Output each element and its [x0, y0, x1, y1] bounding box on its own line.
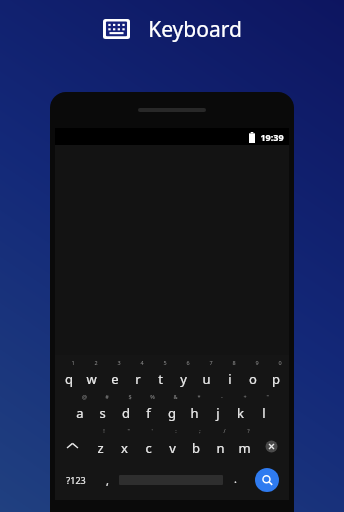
- button[interactable]: 1: [57, 359, 80, 393]
- staticText: ": [127, 427, 130, 434]
- staticText: f: [146, 404, 151, 422]
- staticText: ': [151, 427, 153, 434]
- staticText: 5: [163, 359, 167, 366]
- staticText: x: [121, 439, 128, 457]
- button[interactable]: !: [88, 427, 112, 462]
- staticText: u: [202, 370, 211, 388]
- button[interactable]: 3: [103, 359, 126, 393]
- staticText: j: [216, 404, 220, 422]
- button[interactable]: -: [206, 393, 229, 427]
- button[interactable]: 7: [195, 359, 218, 393]
- staticText: a: [76, 404, 84, 422]
- button[interactable]: ,: [95, 462, 119, 497]
- staticText: ?: [247, 427, 250, 434]
- staticText: !: [103, 427, 105, 434]
- staticText: w: [86, 370, 97, 388]
- staticText: ?123: [66, 474, 86, 486]
- staticText: /: [223, 427, 226, 434]
- button[interactable]: .: [223, 462, 247, 497]
- button[interactable]: 0: [264, 359, 287, 393]
- staticText: Keyboard: [148, 15, 242, 44]
- staticText: #: [105, 393, 109, 400]
- staticText: i: [228, 370, 232, 388]
- button[interactable]: ?: [232, 427, 256, 462]
- button[interactable]: Keyboard: [102, 18, 130, 40]
- staticText: t: [158, 370, 163, 388]
- staticText: d: [122, 404, 130, 422]
- staticText: z: [97, 439, 104, 457]
- button[interactable]: Space: [119, 470, 223, 489]
- button[interactable]: 4: [126, 359, 149, 393]
- staticText: 1: [71, 359, 75, 366]
- staticText: g: [168, 404, 176, 422]
- staticText: 4: [140, 359, 144, 366]
- staticText: r: [135, 370, 141, 388]
- staticText: $: [128, 393, 132, 400]
- staticText: l: [262, 404, 266, 422]
- staticText: ": [266, 393, 269, 400]
- staticText: 9: [255, 359, 259, 366]
- button[interactable]: ;: [184, 427, 208, 462]
- button[interactable]: %: [137, 393, 160, 427]
- staticText: *: [197, 393, 201, 400]
- staticText: :: [175, 427, 177, 434]
- staticText: 0: [278, 359, 282, 366]
- staticText: &: [173, 393, 178, 400]
- staticText: +: [243, 393, 247, 400]
- staticText: m: [238, 439, 251, 457]
- button[interactable]: $: [114, 393, 137, 427]
- button[interactable]: /: [208, 427, 232, 462]
- staticText: 6: [186, 359, 190, 366]
- button[interactable]: 8: [218, 359, 241, 393]
- staticText: 19:39: [260, 131, 284, 143]
- button[interactable]: 5: [149, 359, 172, 393]
- staticText: e: [111, 370, 119, 388]
- staticText: 7: [209, 359, 213, 366]
- staticText: -: [221, 393, 223, 400]
- button[interactable]: ?123: [57, 462, 95, 497]
- staticText: %: [150, 393, 155, 400]
- staticText: p: [272, 370, 280, 388]
- staticText: ,: [106, 473, 109, 488]
- button[interactable]: 6: [172, 359, 195, 393]
- button[interactable]: 2: [80, 359, 103, 393]
- staticText: v: [169, 439, 176, 457]
- button[interactable]: #: [91, 393, 114, 427]
- staticText: o: [249, 370, 257, 388]
- button[interactable]: +: [229, 393, 252, 427]
- staticText: s: [99, 404, 106, 422]
- button[interactable]: &: [160, 393, 183, 427]
- button[interactable]: Shift: [57, 427, 88, 462]
- staticText: .: [234, 471, 237, 486]
- staticText: 8: [232, 359, 236, 366]
- staticText: y: [180, 370, 187, 388]
- staticText: k: [237, 404, 244, 422]
- button[interactable]: *: [183, 393, 206, 427]
- button[interactable]: ": [112, 427, 136, 462]
- button[interactable]: ': [136, 427, 160, 462]
- button[interactable]: @: [69, 393, 91, 427]
- staticText: ;: [199, 427, 201, 434]
- staticText: 3: [117, 359, 121, 366]
- staticText: h: [190, 404, 199, 422]
- button[interactable]: 9: [241, 359, 264, 393]
- button[interactable]: ": [252, 393, 275, 427]
- staticText: @: [82, 393, 87, 400]
- staticText: c: [145, 439, 152, 457]
- staticText: 2: [94, 359, 98, 366]
- button[interactable]: :: [160, 427, 184, 462]
- button[interactable]: Backspace: [256, 427, 287, 462]
- staticText: q: [65, 370, 73, 388]
- staticText: b: [192, 439, 200, 457]
- button[interactable]: Search: [255, 468, 279, 492]
- staticText: n: [216, 439, 225, 457]
